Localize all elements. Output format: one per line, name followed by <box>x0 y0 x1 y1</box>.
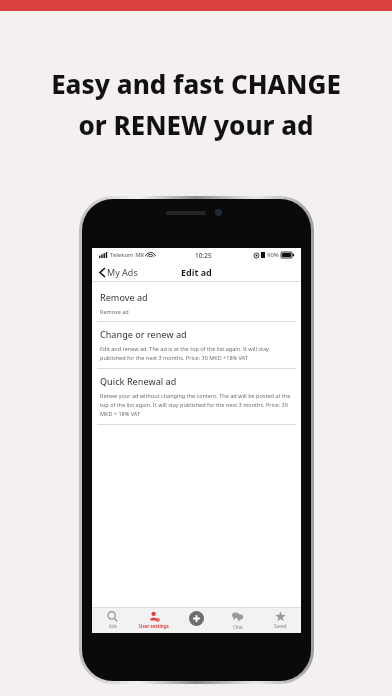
staticText: User settings <box>139 623 169 629</box>
button[interactable]: Change or renew ad <box>92 322 301 368</box>
staticText: 90% <box>267 251 279 259</box>
staticText: Renew your ad without changing the conte… <box>100 392 293 418</box>
button[interactable]: Remove ad <box>92 285 301 321</box>
staticText: Saved <box>274 623 287 629</box>
staticText: Remove ad <box>100 291 148 303</box>
button[interactable]: Quick Renewal ad <box>92 369 301 424</box>
button[interactable]: Saved <box>259 607 301 633</box>
staticText: Remove ad <box>100 308 129 315</box>
button[interactable]: Chat <box>217 607 259 633</box>
staticText: Change or renew ad <box>100 328 187 340</box>
staticText: Edit and renew ad. The ad is at the top … <box>100 345 293 362</box>
staticText: 10:25 <box>195 251 212 260</box>
staticText: My Ads <box>107 266 138 278</box>
button[interactable]: User settings <box>133 607 175 633</box>
button[interactable]: Add <box>175 607 217 633</box>
button[interactable]: My Ads <box>98 264 140 280</box>
staticText: Easy and fast CHANGE <box>51 66 341 101</box>
staticText: Quick Renewal ad <box>100 375 177 387</box>
staticText: or RENEW your ad <box>78 107 314 142</box>
staticText: Ads <box>109 623 117 629</box>
staticText: Edit ad <box>181 266 212 278</box>
button[interactable]: Ads <box>92 607 133 633</box>
staticText: Telekom MK <box>110 251 145 259</box>
staticText: Chat <box>233 624 243 630</box>
